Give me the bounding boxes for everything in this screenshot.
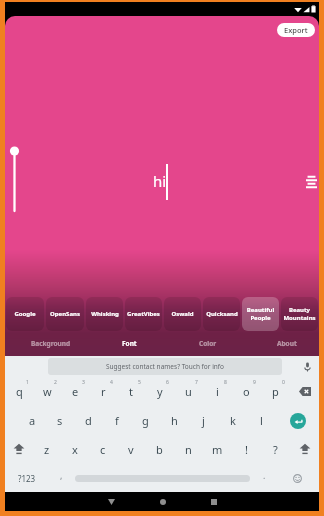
staticText: 9 bbox=[253, 379, 256, 386]
button[interactable]: s bbox=[46, 406, 74, 435]
button[interactable]: u bbox=[174, 377, 203, 406]
staticText: z bbox=[44, 442, 50, 457]
staticText: Background bbox=[31, 339, 71, 348]
button[interactable]: Shift bbox=[290, 435, 319, 464]
staticText: Color bbox=[199, 339, 217, 348]
staticText: o bbox=[243, 384, 250, 399]
button[interactable]: q bbox=[5, 377, 33, 406]
button[interactable]: OpenSans bbox=[46, 297, 84, 331]
staticText: x bbox=[72, 442, 78, 457]
button[interactable]: Quicksand bbox=[203, 297, 240, 331]
button[interactable]: y bbox=[145, 377, 174, 406]
button[interactable]: Text align bbox=[297, 166, 319, 198]
staticText: ! bbox=[245, 442, 248, 457]
button[interactable]: Backspace bbox=[290, 377, 319, 406]
staticText: Quicksand bbox=[206, 310, 238, 318]
staticText: ?123 bbox=[18, 473, 36, 484]
staticText: , bbox=[60, 469, 63, 481]
button[interactable]: f bbox=[102, 406, 131, 435]
staticText: Export bbox=[284, 25, 308, 35]
staticText: c bbox=[100, 442, 106, 457]
button[interactable]: n bbox=[174, 435, 203, 464]
button[interactable]: Color bbox=[168, 331, 247, 356]
button[interactable]: d bbox=[74, 406, 102, 435]
staticText: ? bbox=[273, 442, 278, 457]
button[interactable]: Recents bbox=[188, 492, 239, 511]
button[interactable]: Beautiful People bbox=[242, 297, 279, 331]
button[interactable]: GreatVibes bbox=[125, 297, 162, 331]
button[interactable]: Voice input bbox=[304, 362, 311, 372]
staticText: 5 bbox=[138, 379, 141, 386]
staticText: Suggest contact names? Touch for info bbox=[106, 362, 224, 371]
button[interactable]: l bbox=[247, 406, 276, 435]
staticText: d bbox=[85, 413, 92, 428]
button[interactable]: e bbox=[61, 377, 89, 406]
button[interactable]: ! bbox=[232, 435, 261, 464]
button[interactable]: o bbox=[232, 377, 261, 406]
button[interactable]: w bbox=[33, 377, 61, 406]
staticText: f bbox=[115, 413, 119, 428]
button[interactable]: Whisking bbox=[86, 297, 123, 331]
button[interactable]: x bbox=[61, 435, 89, 464]
button[interactable]: , bbox=[49, 464, 73, 492]
button[interactable]: r bbox=[89, 377, 117, 406]
button[interactable]: About bbox=[247, 331, 319, 356]
staticText: Beautiful People bbox=[242, 306, 279, 322]
button[interactable]: Home bbox=[137, 492, 188, 511]
staticText: m bbox=[212, 442, 223, 457]
staticText: l bbox=[260, 413, 263, 428]
button[interactable]: Beauty Mountains bbox=[281, 297, 318, 331]
button[interactable]: Enter bbox=[276, 406, 319, 435]
staticText: hi bbox=[153, 171, 167, 191]
button[interactable]: v bbox=[117, 435, 145, 464]
button[interactable]: k bbox=[218, 406, 247, 435]
staticText: p bbox=[272, 384, 279, 399]
button[interactable]: Oswald bbox=[164, 297, 201, 331]
button[interactable]: ?123 bbox=[5, 464, 49, 492]
button[interactable]: a bbox=[18, 406, 46, 435]
staticText: h bbox=[171, 413, 178, 428]
staticText: g bbox=[142, 413, 149, 428]
staticText: . bbox=[263, 469, 266, 481]
button[interactable]: Font bbox=[90, 331, 168, 356]
staticText: About bbox=[277, 339, 297, 348]
staticText: Font bbox=[122, 339, 137, 348]
button[interactable]: Back bbox=[86, 492, 137, 511]
staticText: j bbox=[202, 413, 205, 428]
button[interactable]: Emoji bbox=[276, 464, 319, 492]
staticText: y bbox=[157, 384, 163, 399]
button[interactable]: j bbox=[189, 406, 218, 435]
staticText: r bbox=[101, 384, 106, 399]
button[interactable]: z bbox=[33, 435, 61, 464]
button[interactable]: p bbox=[261, 377, 290, 406]
button[interactable]: Space bbox=[73, 464, 252, 492]
staticText: 6 bbox=[166, 379, 169, 386]
staticText: 3 bbox=[82, 379, 85, 386]
staticText: u bbox=[185, 384, 192, 399]
staticText: 1 bbox=[26, 379, 29, 386]
staticText: k bbox=[230, 413, 236, 428]
button[interactable]: Google bbox=[6, 297, 44, 331]
staticText: Beauty Mountains bbox=[281, 306, 318, 322]
staticText: t bbox=[129, 384, 133, 399]
button[interactable]: h bbox=[160, 406, 189, 435]
staticText: q bbox=[16, 384, 23, 399]
button[interactable]: m bbox=[203, 435, 232, 464]
button[interactable]: b bbox=[145, 435, 174, 464]
button[interactable]: ? bbox=[261, 435, 290, 464]
button[interactable]: Suggest contact names? Touch for info bbox=[48, 358, 282, 375]
button[interactable]: Shift bbox=[5, 435, 33, 464]
staticText: Google bbox=[14, 310, 36, 318]
staticText: Oswald bbox=[171, 310, 194, 318]
button[interactable]: c bbox=[89, 435, 117, 464]
button[interactable]: i bbox=[203, 377, 232, 406]
staticText: 0 bbox=[282, 379, 285, 386]
staticText: n bbox=[185, 442, 192, 457]
button[interactable]: t bbox=[117, 377, 145, 406]
staticText: Whisking bbox=[91, 310, 119, 318]
button[interactable]: Export bbox=[277, 23, 315, 37]
button[interactable]: g bbox=[131, 406, 160, 435]
button[interactable]: Background bbox=[12, 331, 90, 356]
staticText: 7 bbox=[195, 379, 198, 386]
